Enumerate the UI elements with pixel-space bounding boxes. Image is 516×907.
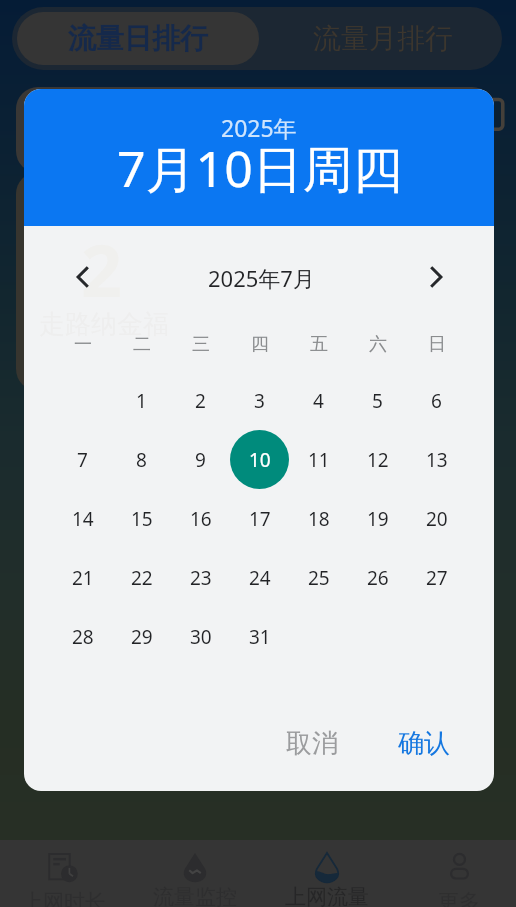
staticText: 一: [74, 333, 92, 355]
staticText: 21: [72, 565, 94, 591]
button[interactable]: 27: [407, 548, 466, 607]
button[interactable]: 22: [112, 548, 171, 607]
staticText: 三: [192, 333, 210, 355]
button[interactable]: 21: [53, 548, 112, 607]
button[interactable]: 8: [112, 430, 171, 489]
staticText: 16: [190, 506, 212, 532]
button[interactable]: 16: [171, 489, 230, 548]
staticText: 五: [310, 333, 328, 355]
staticText: 11: [308, 447, 330, 473]
staticText: 19: [367, 506, 389, 532]
staticText: 25: [308, 565, 330, 591]
staticText: 2: [195, 388, 206, 414]
button[interactable]: 29: [112, 607, 171, 666]
staticText: 二: [133, 333, 151, 355]
staticText: 四: [251, 333, 269, 355]
button[interactable]: 6: [407, 371, 466, 430]
staticText: 30: [190, 624, 212, 650]
button[interactable]: 31: [230, 607, 289, 666]
button[interactable]: 3: [230, 371, 289, 430]
button[interactable]: 17: [230, 489, 289, 548]
staticText: 流量月排行: [313, 21, 453, 56]
staticText: 20: [426, 506, 448, 532]
button[interactable]: 11: [289, 430, 348, 489]
button[interactable]: 25: [289, 548, 348, 607]
button[interactable]: 12: [348, 430, 407, 489]
button[interactable]: 14: [53, 489, 112, 548]
staticText: 31: [249, 624, 271, 650]
staticText: 5: [372, 388, 383, 414]
button[interactable]: 流量日排行: [17, 12, 259, 65]
button[interactable]: 26: [348, 548, 407, 607]
button[interactable]: 15: [112, 489, 171, 548]
staticText: 4: [313, 388, 324, 414]
button[interactable]: 19: [348, 489, 407, 548]
staticText: 26: [367, 565, 389, 591]
button[interactable]: Previous month: [60, 255, 104, 299]
staticText: 2: [81, 220, 123, 318]
staticText: 22: [131, 565, 153, 591]
button[interactable]: 上网流量: [261, 840, 393, 907]
staticText: 上网流量: [285, 884, 369, 907]
staticText: 流量日排行: [68, 21, 208, 56]
staticText: 12: [367, 447, 389, 473]
staticText: 2025年: [221, 112, 297, 143]
button[interactable]: 确认: [386, 717, 462, 770]
staticText: 3: [254, 388, 265, 414]
staticText: 日: [428, 333, 446, 355]
button[interactable]: 2: [171, 371, 230, 430]
staticText: 24: [249, 565, 271, 591]
button[interactable]: 取消: [274, 717, 350, 770]
staticText: 7: [77, 447, 88, 473]
button[interactable]: 7: [53, 430, 112, 489]
staticText: 10: [249, 447, 271, 473]
button[interactable]: 23: [171, 548, 230, 607]
button[interactable]: 20: [407, 489, 466, 548]
button[interactable]: Next month: [415, 255, 459, 299]
button[interactable]: 1: [112, 371, 171, 430]
staticText: 28: [72, 624, 94, 650]
button[interactable]: 9: [171, 430, 230, 489]
staticText: 17: [249, 506, 271, 532]
button[interactable]: 18: [289, 489, 348, 548]
staticText: 六: [369, 333, 387, 355]
staticText: 9: [195, 447, 206, 473]
staticText: 15: [131, 506, 153, 532]
staticText: 18: [308, 506, 330, 532]
button[interactable]: 10: [230, 430, 289, 489]
button[interactable]: 4: [289, 371, 348, 430]
staticText: 23: [190, 565, 212, 591]
button[interactable]: 5: [348, 371, 407, 430]
staticText: 14: [72, 506, 94, 532]
staticText: 确认: [398, 727, 450, 760]
button[interactable]: 13: [407, 430, 466, 489]
staticText: 2025年7月: [208, 263, 315, 293]
staticText: 8: [136, 447, 147, 473]
staticText: 29: [131, 624, 153, 650]
button[interactable]: 流量月排行: [264, 7, 502, 70]
staticText: 6: [431, 388, 442, 414]
staticText: 取消: [286, 727, 338, 760]
button[interactable]: 28: [53, 607, 112, 666]
staticText: 13: [426, 447, 448, 473]
staticText: 7月10日周四: [117, 134, 403, 202]
button[interactable]: 24: [230, 548, 289, 607]
staticText: 1: [136, 388, 147, 414]
button[interactable]: 30: [171, 607, 230, 666]
staticText: 走路纳金福: [39, 308, 169, 341]
staticText: 27: [426, 565, 448, 591]
